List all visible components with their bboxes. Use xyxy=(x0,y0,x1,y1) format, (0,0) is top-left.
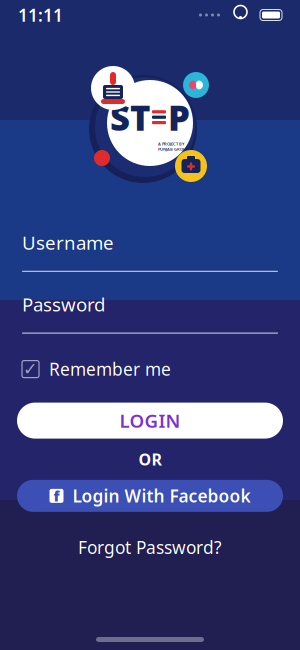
staticText: Login With Facebook xyxy=(72,484,250,507)
staticText: Remember me xyxy=(49,358,171,381)
button[interactable]: Forgot Password? xyxy=(58,512,242,567)
staticText: LOGIN xyxy=(119,408,180,433)
button[interactable]: LOGIN xyxy=(17,403,283,439)
staticText: ✓ xyxy=(23,359,38,379)
button[interactable]: ✓ xyxy=(0,334,300,389)
staticText: OR xyxy=(138,449,161,470)
staticText: ST xyxy=(110,94,150,140)
staticText: Username xyxy=(22,230,114,255)
staticText: Password xyxy=(22,292,105,317)
staticText: Forgot Password? xyxy=(78,536,222,559)
staticText: P xyxy=(168,94,190,140)
staticText: 11:11 xyxy=(18,3,63,26)
button[interactable]: f xyxy=(17,480,283,512)
staticText: f xyxy=(53,486,59,506)
staticText: A PROJECT BY PUNJAB GROUP xyxy=(158,141,188,152)
